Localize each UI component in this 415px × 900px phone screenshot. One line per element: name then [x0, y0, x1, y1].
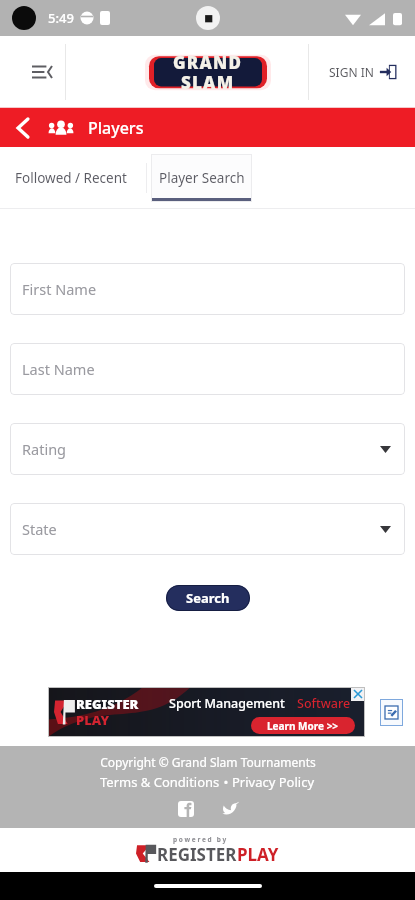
staticText: 5:49: [48, 9, 74, 27]
staticText: Learn More >>: [267, 719, 339, 733]
staticText: REGISTER: [157, 843, 237, 866]
button[interactable]: Home: [154, 884, 262, 888]
staticText: Software: [297, 695, 351, 712]
staticText: SIGN IN: [329, 64, 374, 80]
staticText: Terms & Conditions: [100, 773, 220, 791]
button[interactable]: Player Search: [151, 154, 252, 202]
button[interactable]: REGISTER: [48, 687, 365, 737]
button[interactable]: Back: [6, 111, 40, 145]
button[interactable]: Learn More >>: [251, 717, 355, 734]
staticText: SLAM: [181, 71, 235, 94]
staticText: PLAY: [237, 843, 279, 866]
button[interactable]: Search: [166, 585, 250, 611]
staticText: State: [22, 519, 57, 539]
button[interactable]: SIGN IN: [325, 55, 401, 89]
button[interactable]: Close ad: [351, 687, 365, 701]
staticText: REGISTER: [76, 695, 139, 713]
button[interactable]: Last Name: [10, 343, 405, 395]
button[interactable]: Followed / Recent: [0, 156, 141, 200]
button[interactable]: Feedback: [380, 699, 403, 726]
staticText: Players: [88, 117, 144, 139]
staticText: Privacy Policy: [232, 773, 315, 791]
button[interactable]: Twitter: [220, 799, 240, 819]
staticText: •: [220, 773, 232, 791]
staticText: PLAY: [76, 711, 110, 729]
staticText: Copyright © Grand Slam Tournaments: [100, 754, 316, 770]
staticText: Last Name: [22, 359, 95, 379]
staticText: Search: [186, 589, 230, 607]
staticText: First Name: [22, 279, 97, 299]
staticText: Followed / Recent: [15, 169, 127, 187]
staticText: GRAND: [173, 51, 243, 74]
button[interactable]: State: [10, 503, 405, 555]
button[interactable]: p o w e r e d b y: [136, 835, 279, 866]
staticText: Sport Management: [169, 695, 285, 712]
button[interactable]: First Name: [10, 263, 405, 315]
button[interactable]: Menu: [22, 52, 62, 92]
button[interactable]: Grand Slam home: [144, 48, 272, 96]
staticText: Rating: [22, 439, 67, 459]
button[interactable]: Facebook: [176, 799, 196, 819]
staticText: p o w e r e d b y: [173, 835, 227, 844]
button[interactable]: Terms & Conditions: [100, 773, 220, 791]
staticText: Player Search: [159, 169, 245, 187]
button[interactable]: Rating: [10, 423, 405, 475]
button[interactable]: Privacy Policy: [232, 773, 315, 791]
